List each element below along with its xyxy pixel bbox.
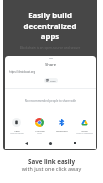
staticText: Save to Device — [10, 132, 24, 135]
button[interactable]: Copy — [44, 78, 58, 83]
button[interactable]: Chrome — [29, 118, 50, 135]
staticText: Chrome — [35, 129, 45, 132]
button[interactable]: Save — [6, 118, 27, 135]
staticText: Save link easily — [0, 157, 103, 165]
staticText: Easily build decentralized apps — [3, 10, 97, 41]
button[interactable]: Bluetooth — [51, 118, 72, 132]
staticText: Drive — [81, 129, 88, 132]
staticText: Save — [14, 129, 20, 132]
staticText: Copy — [50, 79, 56, 82]
staticText: Copy to clipboard — [76, 132, 93, 135]
button[interactable]: Drive — [74, 118, 95, 135]
staticText: Share — [5, 62, 96, 68]
staticText: Blockchain is an open-source and secure — [3, 46, 97, 50]
staticText: Bluetooth — [56, 129, 68, 132]
staticText: with just one click away — [0, 165, 103, 172]
staticText: https://droidcast.org — [9, 70, 36, 74]
staticText: Chat — [37, 132, 42, 135]
other: Home — [49, 142, 52, 145]
staticText: No recommended people to share with — [5, 99, 96, 103]
other: Back — [25, 142, 28, 145]
